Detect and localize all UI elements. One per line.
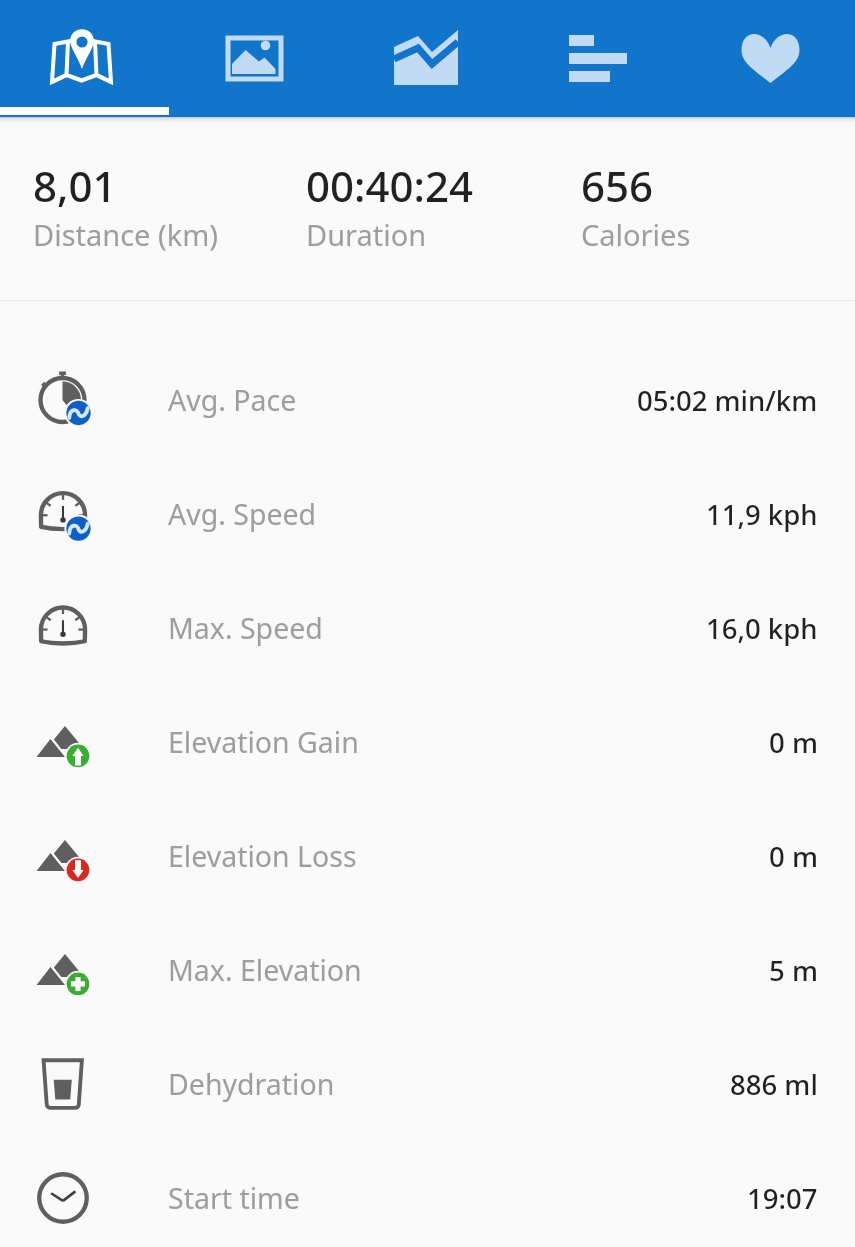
staticText: 656 [581, 157, 654, 214]
staticText: Calories [581, 215, 691, 254]
staticText: Avg. Pace [168, 381, 297, 420]
staticText: Distance (km) [33, 215, 219, 254]
button[interactable]: Avg. Pace [0, 343, 855, 457]
button[interactable]: Dehydration [0, 1027, 855, 1141]
staticText: Elevation Gain [168, 723, 359, 762]
button[interactable]: Avg. Speed [0, 457, 855, 571]
button[interactable]: Photos [171, 0, 342, 117]
staticText: 886 ml [730, 1066, 818, 1103]
staticText: Dehydration [168, 1065, 335, 1104]
staticText: 16,0 kph [706, 610, 818, 647]
staticText: 19:07 [747, 1180, 818, 1217]
staticText: 00:40:24 [306, 157, 473, 214]
button[interactable]: Max. Speed [0, 571, 855, 685]
staticText: 11,9 kph [706, 496, 818, 533]
staticText: Start time [168, 1179, 300, 1218]
staticText: Max. Speed [168, 609, 323, 648]
button[interactable]: Splits [513, 0, 684, 117]
button[interactable]: Max. Elevation [0, 913, 855, 1027]
staticText: Avg. Speed [168, 495, 317, 534]
staticText: 5 m [769, 952, 818, 989]
button[interactable]: Chart [342, 0, 513, 117]
button[interactable]: Heart rate [684, 0, 855, 117]
staticText: 05:02 min/km [637, 382, 818, 419]
staticText: Duration [306, 215, 427, 254]
button[interactable]: Elevation Loss [0, 799, 855, 913]
staticText: 0 m [769, 838, 818, 875]
button[interactable]: Elevation Gain [0, 685, 855, 799]
staticText: Elevation Loss [168, 837, 357, 876]
button[interactable]: Start time [0, 1141, 855, 1247]
staticText: 8,01 [33, 157, 117, 214]
button[interactable]: Map [0, 0, 171, 117]
staticText: Max. Elevation [168, 951, 362, 990]
staticText: 0 m [769, 724, 818, 761]
